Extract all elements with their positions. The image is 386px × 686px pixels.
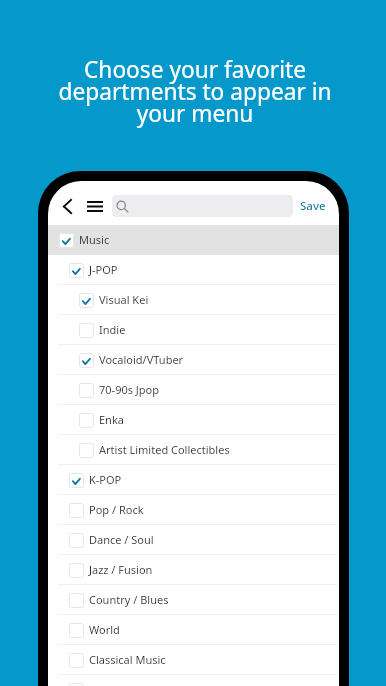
staticText: Pop / Rock	[89, 502, 144, 517]
button[interactable]: Visual Kei	[48, 285, 339, 315]
button[interactable]: Enka	[48, 405, 339, 435]
staticText: 70-90s Jpop	[99, 382, 160, 397]
staticText: J-POP	[89, 262, 118, 277]
button[interactable]: Country / Blues	[48, 585, 339, 615]
staticText: Vocaloid/VTuber	[99, 352, 184, 367]
button[interactable]: World	[48, 615, 339, 645]
staticText: Artist Limited Collectibles	[99, 442, 230, 457]
button[interactable]: Back	[56, 187, 79, 225]
staticText: World	[89, 622, 120, 637]
staticText: Dance / Soul	[89, 532, 154, 547]
staticText: Jazz / Fusion	[89, 562, 153, 577]
button[interactable]: 70-90s Jpop	[48, 375, 339, 405]
staticText: Country / Blues	[89, 592, 169, 607]
button[interactable]: Indie	[48, 315, 339, 345]
button[interactable]: Vocaloid/VTuber	[48, 345, 339, 375]
button[interactable]: Classical Music	[48, 645, 339, 675]
button[interactable]: K-POP	[48, 465, 339, 495]
staticText: Classical Music	[89, 652, 166, 667]
button[interactable]: Dance / Soul	[48, 525, 339, 555]
button[interactable]: Search	[112, 195, 293, 217]
staticText: Enka	[99, 412, 124, 427]
button[interactable]: Music	[48, 225, 339, 255]
staticText: Choose your favorite departments to appe…	[2, 54, 386, 129]
button[interactable]: Save	[300, 187, 326, 225]
button[interactable]: Artist Limited Collectibles	[48, 435, 339, 465]
button[interactable]: J-POP	[48, 255, 339, 285]
staticText: K-POP	[89, 472, 122, 487]
staticText: Save	[300, 198, 326, 214]
button[interactable]: Menu	[83, 187, 106, 225]
button[interactable]: Pop / Rock	[48, 495, 339, 525]
staticText: Indie	[99, 322, 126, 337]
staticText: Music	[79, 232, 110, 247]
button[interactable]: Jazz / Fusion	[48, 555, 339, 585]
staticText: Visual Kei	[99, 292, 149, 307]
